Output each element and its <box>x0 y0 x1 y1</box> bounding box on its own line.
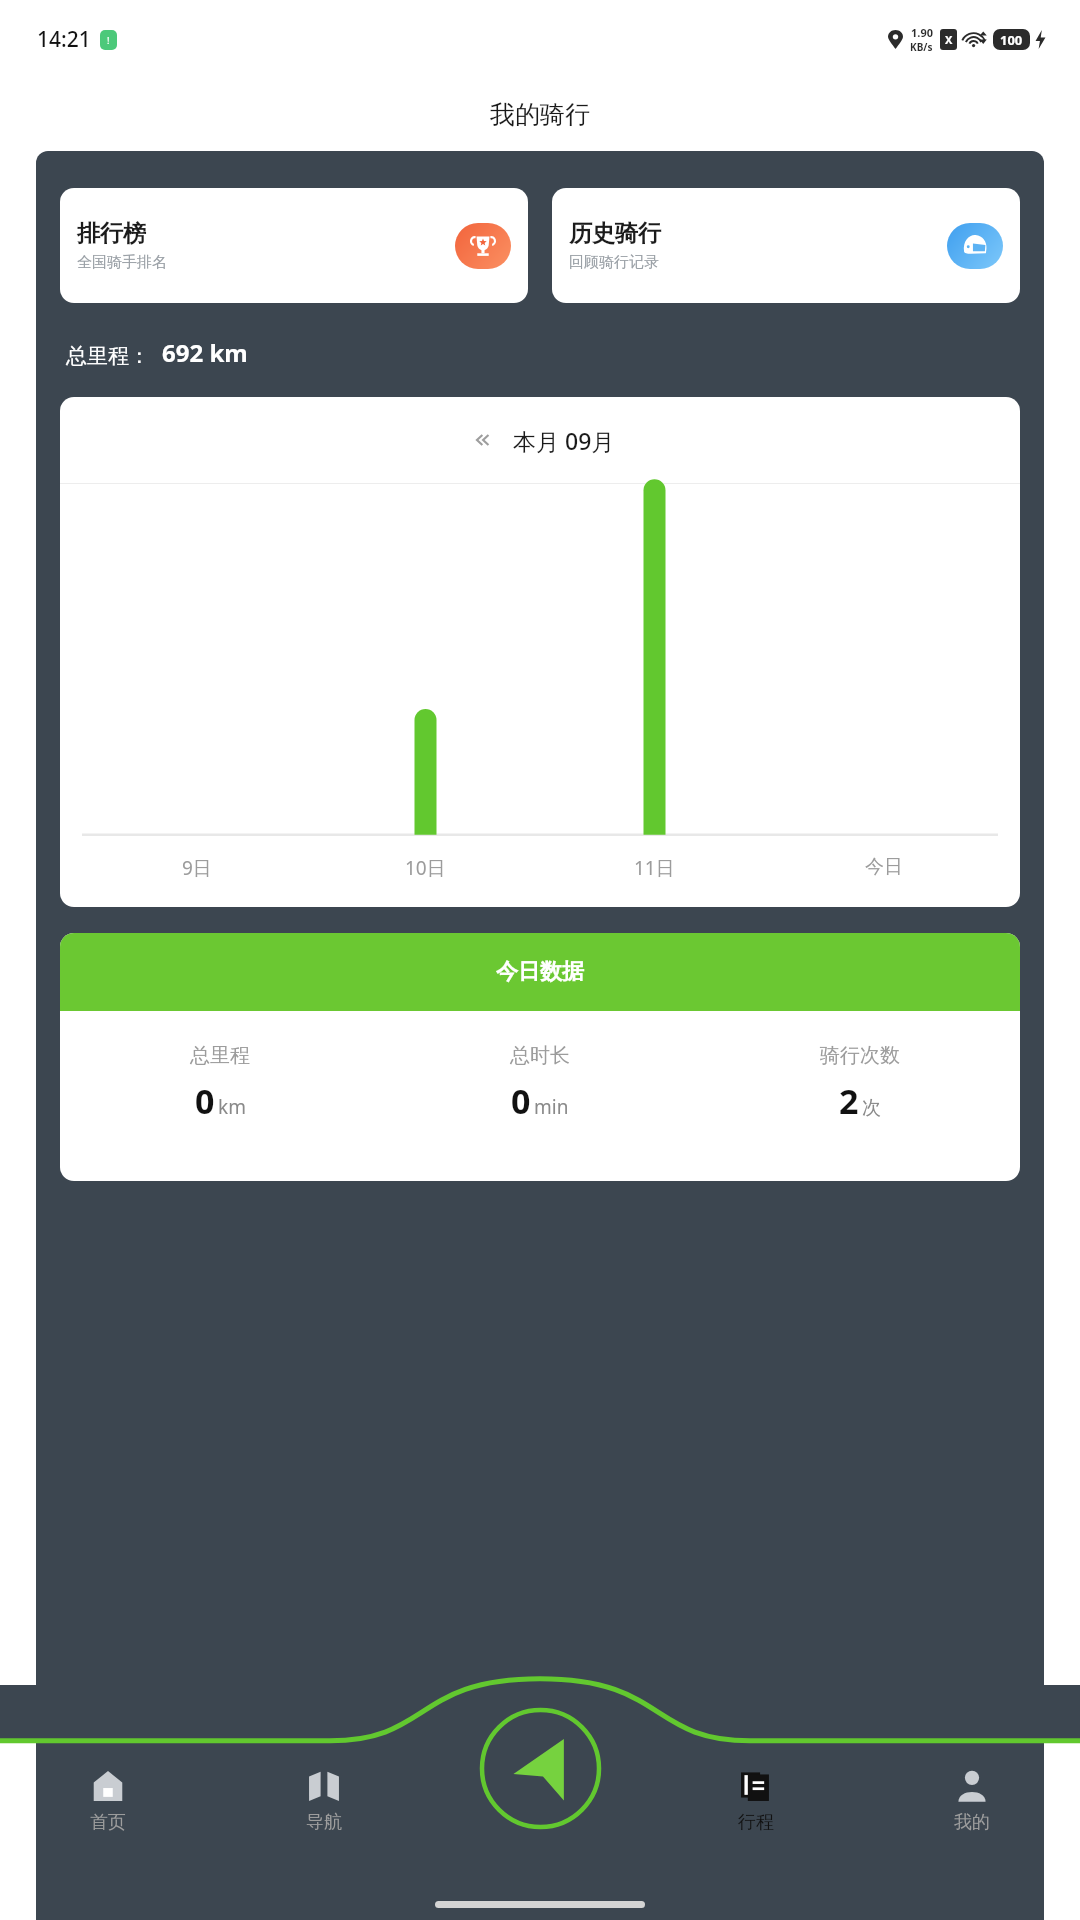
staticText: 次 <box>862 1096 881 1120</box>
staticText: 我的 <box>954 1811 990 1834</box>
staticText: 导航 <box>306 1811 342 1834</box>
staticText: 排行榜 <box>77 219 146 248</box>
staticText: 我的骑行 <box>490 99 590 130</box>
staticText: KB/s <box>910 40 933 54</box>
staticText: 100 <box>1000 31 1023 49</box>
button[interactable]: 首页 <box>0 1763 216 1840</box>
button[interactable]: 历史骑行 <box>552 188 1020 303</box>
staticText: 0 <box>511 1078 531 1124</box>
staticText: 回顾骑行记录 <box>569 253 659 272</box>
staticText: 全国骑手排名 <box>77 253 167 272</box>
staticText: 总里程： <box>66 343 150 369</box>
staticText: 692 km <box>162 336 248 369</box>
staticText: 历史骑行 <box>569 219 661 248</box>
staticText: 今日 <box>865 855 903 879</box>
staticText: 首页 <box>90 1811 126 1834</box>
staticText: 骑行次数 <box>820 1043 900 1068</box>
staticText: 2 <box>839 1078 859 1124</box>
button[interactable]: 开始骑行 <box>479 1707 602 1830</box>
staticText: km <box>218 1094 246 1120</box>
button[interactable]: 上个月 <box>465 423 499 457</box>
staticText: 总时长 <box>510 1043 570 1068</box>
button[interactable]: 导航 <box>216 1763 432 1840</box>
button[interactable]: 排行榜 <box>60 188 528 303</box>
staticText: min <box>534 1094 569 1120</box>
staticText: 9日 <box>182 855 212 881</box>
staticText: 0 <box>195 1078 215 1124</box>
staticText: 1.90 <box>911 25 933 40</box>
staticText: 总里程 <box>190 1043 250 1068</box>
button[interactable]: 我的 <box>864 1763 1080 1840</box>
staticText: 11日 <box>634 855 675 881</box>
staticText: ! <box>107 34 110 46</box>
staticText: X <box>945 32 953 47</box>
staticText: 本月 09月 <box>513 425 615 456</box>
button[interactable]: 行程 <box>648 1763 864 1840</box>
staticText: 14:21 <box>37 25 91 54</box>
staticText: 10日 <box>405 855 446 881</box>
staticText: 行程 <box>738 1811 774 1834</box>
staticText: 今日数据 <box>496 958 584 986</box>
